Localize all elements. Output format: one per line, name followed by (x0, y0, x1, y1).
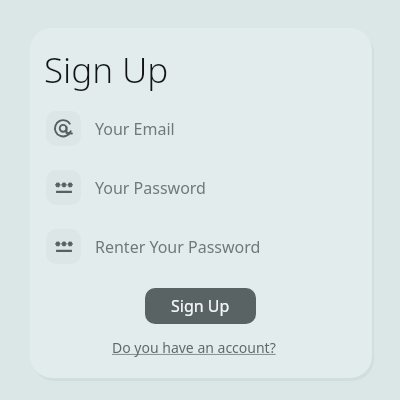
staticText: Sign Up (44, 46, 169, 94)
other: Your Password (46, 170, 81, 205)
button[interactable]: Your Password (30, 170, 372, 205)
button[interactable]: Sign Up (145, 288, 256, 324)
staticText: Do you have an account? (112, 338, 276, 357)
button[interactable]: Your Email (30, 111, 372, 146)
other: Your Email (46, 111, 81, 146)
staticText: Sign Up (171, 295, 230, 317)
staticText: Your Email (95, 118, 175, 140)
other: Renter Your Password (46, 229, 81, 264)
button[interactable]: Renter Your Password (30, 229, 372, 264)
button[interactable]: Do you have an account? (110, 336, 278, 359)
staticText: Renter Your Password (95, 236, 261, 258)
staticText: Your Password (95, 177, 206, 199)
